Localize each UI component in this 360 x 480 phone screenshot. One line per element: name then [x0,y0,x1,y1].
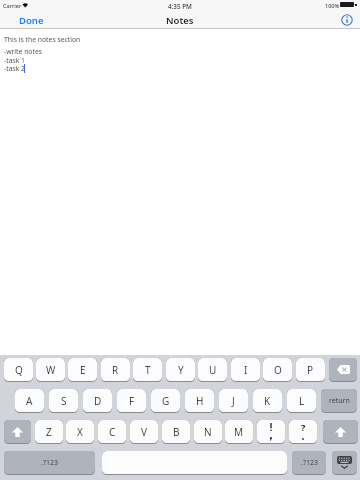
button[interactable]: S [49,389,78,412]
button[interactable] [332,451,357,474]
button[interactable] [257,420,285,443]
staticText: -task 1 [4,56,25,65]
button[interactable] [329,358,357,381]
staticText: This is the notes section [4,35,81,44]
staticText: R [112,363,119,377]
staticText: N [204,425,212,439]
staticText: A [26,394,33,408]
button[interactable]: B [162,420,190,443]
staticText: S [61,394,67,408]
button[interactable]: Z [35,420,63,443]
button[interactable]: I [231,358,260,381]
button[interactable]: F [117,389,146,412]
staticText: -task 2 [4,64,25,73]
button[interactable]: V [130,420,158,443]
staticText: .?123 [301,458,318,468]
staticText: D [94,394,102,408]
staticText: B [173,425,180,439]
staticText: X [77,425,83,439]
staticText: E [80,363,86,377]
staticText: I [244,363,248,377]
staticText: V [141,425,147,439]
button[interactable]: O [263,358,292,381]
staticText: H [196,394,204,408]
button[interactable]: .?123 [4,451,95,474]
button[interactable]: J [219,389,248,412]
button[interactable]: L [287,389,316,412]
staticText: T [145,363,151,377]
staticText: Z [46,425,52,439]
staticText: J [232,394,235,408]
staticText: ? [301,421,306,433]
staticText: return [329,396,350,406]
staticText: Q [15,363,23,377]
button[interactable]: W [36,358,65,381]
button[interactable]: M [225,420,253,443]
staticText: F [129,394,135,408]
button[interactable] [323,420,358,443]
button[interactable]: R [101,358,130,381]
button[interactable]: Q [4,358,33,381]
staticText: C [109,425,116,439]
button[interactable]: U [198,358,227,381]
button[interactable]: .?123 [292,451,326,474]
staticText: 100% [325,2,340,9]
staticText: O [274,363,282,377]
button[interactable]: G [151,389,180,412]
button[interactable]: N [194,420,222,443]
staticText: Carrier [3,2,22,9]
button[interactable] [102,451,287,474]
button[interactable]: K [253,389,282,412]
staticText: .?123 [41,458,58,468]
button[interactable]: P [296,358,325,381]
button[interactable]: D [83,389,112,412]
staticText: K [264,394,271,408]
staticText: U [209,363,217,377]
button[interactable]: T [133,358,162,381]
button[interactable]: ? [289,420,317,443]
staticText: -write notes [4,47,43,56]
staticText: L [299,394,305,408]
staticText: M [234,425,244,439]
button[interactable]: return [321,389,357,412]
staticText: Notes [166,14,194,27]
button[interactable]: Done [19,14,44,27]
button[interactable]: A [15,389,44,412]
staticText: Y [178,363,184,377]
staticText: Done [19,14,44,27]
button[interactable]: C [98,420,126,443]
button[interactable] [4,420,31,443]
staticText: P [307,363,314,377]
button[interactable]: X [66,420,94,443]
staticText: G [162,394,170,408]
button[interactable]: E [68,358,97,381]
staticText: 4:35 PM [168,2,192,11]
button[interactable] [340,13,354,27]
button[interactable]: H [185,389,214,412]
staticText: W [46,363,56,377]
button[interactable]: Y [166,358,195,381]
